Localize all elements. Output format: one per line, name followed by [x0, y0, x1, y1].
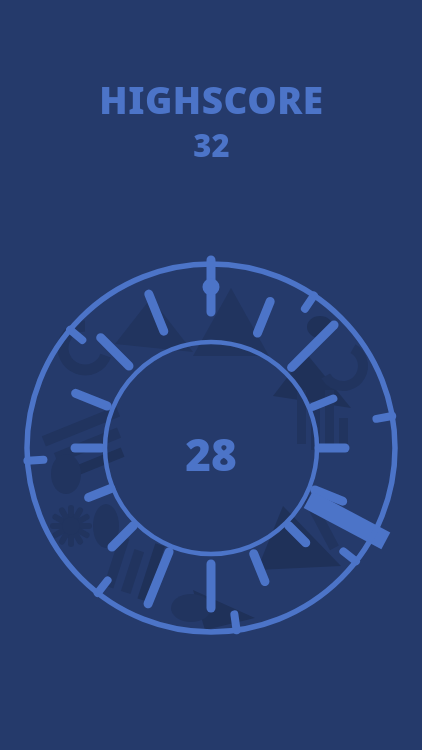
staticText: 32 — [193, 124, 230, 166]
staticText: 28 — [185, 424, 237, 484]
staticText: HIGHSCORE — [99, 74, 324, 124]
button[interactable]: Spin dial — [0, 0, 422, 750]
